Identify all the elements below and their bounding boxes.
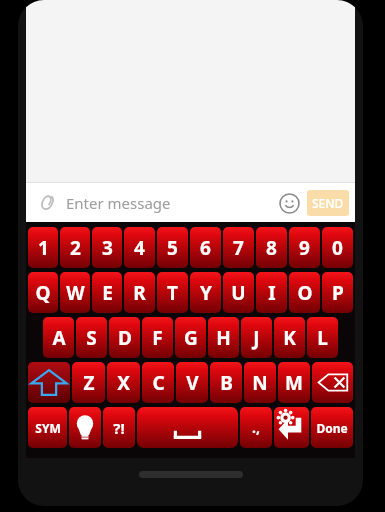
staticText: L bbox=[317, 325, 328, 351]
button[interactable]: F bbox=[142, 317, 173, 358]
staticText: 9 bbox=[299, 235, 310, 261]
button[interactable]: Q bbox=[28, 272, 58, 313]
button[interactable]: M bbox=[278, 362, 310, 403]
button[interactable]: Shift bbox=[28, 362, 70, 403]
staticText: 8 bbox=[266, 235, 277, 261]
staticText: B bbox=[220, 370, 233, 396]
button[interactable]: O bbox=[289, 272, 320, 313]
staticText: H bbox=[216, 325, 231, 351]
button[interactable]: 2 bbox=[60, 227, 90, 268]
button[interactable]: Done bbox=[311, 407, 353, 448]
button[interactable]: SEND bbox=[307, 190, 349, 216]
staticText: P bbox=[332, 280, 344, 306]
button[interactable]: 4 bbox=[124, 227, 155, 268]
staticText: Y bbox=[200, 280, 212, 306]
button[interactable]: Attach file bbox=[32, 188, 62, 218]
staticText: D bbox=[118, 325, 132, 351]
button[interactable]: Theme bbox=[69, 407, 101, 448]
staticText: C bbox=[152, 370, 165, 396]
staticText: O bbox=[297, 280, 313, 306]
button[interactable]: Space bbox=[137, 407, 238, 448]
button[interactable]: E bbox=[92, 272, 122, 313]
staticText: 5 bbox=[167, 235, 178, 261]
staticText: U bbox=[231, 280, 246, 306]
staticText: E bbox=[102, 280, 113, 306]
button[interactable]: 3 bbox=[92, 227, 122, 268]
button[interactable]: ?! bbox=[103, 407, 135, 448]
staticText: J bbox=[253, 325, 260, 351]
button[interactable]: N bbox=[244, 362, 276, 403]
staticText: T bbox=[167, 280, 178, 306]
staticText: R bbox=[133, 280, 146, 306]
button[interactable]: I bbox=[256, 272, 287, 313]
staticText: Done bbox=[316, 420, 348, 436]
staticText: SYM bbox=[35, 420, 61, 436]
staticText: W bbox=[66, 280, 85, 306]
button[interactable]: Emoji bbox=[274, 188, 304, 218]
staticText: 6 bbox=[200, 235, 211, 261]
button[interactable]: K bbox=[274, 317, 305, 358]
staticText: I bbox=[268, 280, 276, 306]
staticText: 0 bbox=[332, 235, 343, 261]
button[interactable]: G bbox=[175, 317, 206, 358]
button[interactable]: S bbox=[76, 317, 107, 358]
button[interactable]: 9 bbox=[289, 227, 320, 268]
staticText: V bbox=[186, 370, 199, 396]
staticText: N bbox=[252, 370, 268, 396]
button[interactable]: R bbox=[124, 272, 155, 313]
button[interactable]: Z bbox=[72, 362, 105, 403]
staticText: A bbox=[52, 325, 66, 351]
button[interactable]: 0 bbox=[322, 227, 353, 268]
button[interactable]: 7 bbox=[223, 227, 254, 268]
staticText: Z bbox=[83, 370, 95, 396]
staticText: ., bbox=[252, 418, 260, 437]
staticText: S bbox=[86, 325, 97, 351]
staticText: M bbox=[285, 370, 303, 396]
button[interactable]: C bbox=[142, 362, 174, 403]
staticText: 7 bbox=[233, 235, 244, 261]
staticText: Q bbox=[35, 280, 51, 306]
button[interactable]: Y bbox=[190, 272, 221, 313]
staticText: 2 bbox=[70, 235, 81, 261]
button[interactable]: SYM bbox=[28, 407, 67, 448]
button[interactable]: U bbox=[223, 272, 254, 313]
button[interactable]: H bbox=[208, 317, 239, 358]
button[interactable]: B bbox=[210, 362, 242, 403]
button[interactable]: V bbox=[176, 362, 208, 403]
button[interactable]: D bbox=[109, 317, 140, 358]
button[interactable]: X bbox=[107, 362, 140, 403]
button[interactable]: 5 bbox=[157, 227, 188, 268]
staticText: ?! bbox=[113, 418, 125, 438]
staticText: 3 bbox=[102, 235, 113, 261]
staticText: 1 bbox=[38, 235, 49, 261]
button[interactable]: W bbox=[60, 272, 90, 313]
button[interactable]: P bbox=[322, 272, 353, 313]
button[interactable]: L bbox=[307, 317, 338, 358]
button[interactable]: 6 bbox=[190, 227, 221, 268]
button[interactable]: J bbox=[241, 317, 272, 358]
button[interactable]: 8 bbox=[256, 227, 287, 268]
staticText: K bbox=[283, 325, 296, 351]
button[interactable]: ., bbox=[240, 407, 272, 448]
staticText: X bbox=[117, 370, 130, 396]
button[interactable]: T bbox=[157, 272, 188, 313]
button[interactable]: A bbox=[43, 317, 74, 358]
staticText: G bbox=[184, 325, 198, 351]
button[interactable]: Backspace bbox=[312, 362, 353, 403]
staticText: Enter message bbox=[66, 193, 274, 213]
staticText: 4 bbox=[134, 235, 145, 261]
button[interactable]: Enter bbox=[274, 407, 309, 448]
button[interactable]: 1 bbox=[28, 227, 58, 268]
staticText: F bbox=[152, 325, 163, 351]
staticText: SEND bbox=[312, 195, 344, 211]
